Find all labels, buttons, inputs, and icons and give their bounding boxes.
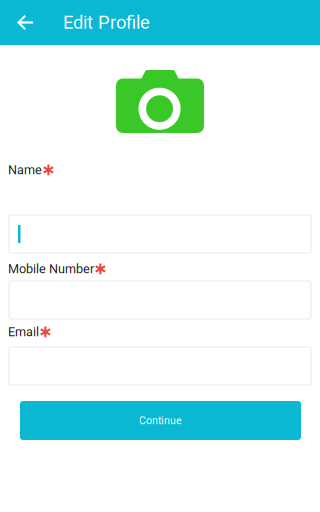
staticText: Name xyxy=(8,163,42,177)
button[interactable]: Back xyxy=(0,0,46,45)
staticText: Continue xyxy=(139,414,182,427)
button[interactable]: Change profile photo xyxy=(116,70,204,133)
staticText: Edit Profile xyxy=(63,12,150,33)
staticText: Mobile Number xyxy=(8,262,94,276)
staticText: Email xyxy=(8,325,39,339)
button[interactable]: Continue xyxy=(20,401,301,440)
